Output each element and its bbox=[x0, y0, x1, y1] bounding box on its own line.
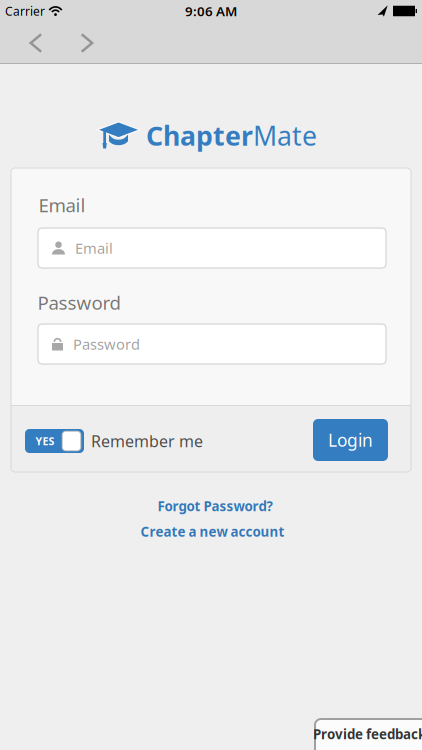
staticText: Email bbox=[38, 193, 85, 217]
staticText: Forgot Password? bbox=[157, 497, 272, 515]
button[interactable]: Login bbox=[313, 419, 388, 461]
staticText: YES bbox=[35, 434, 54, 448]
button[interactable]: Password bbox=[38, 324, 386, 364]
button[interactable]: Forgot Password? bbox=[157, 497, 272, 515]
button[interactable]: Back bbox=[21, 28, 51, 58]
staticText: 9:06 AM bbox=[185, 2, 237, 20]
button[interactable]: Email bbox=[38, 228, 386, 268]
staticText: Password bbox=[73, 334, 140, 354]
staticText: Remember me bbox=[91, 430, 203, 452]
button[interactable]: Remember me toggle, YES bbox=[25, 429, 84, 453]
button[interactable]: Create a new account bbox=[140, 523, 284, 540]
staticText: Email bbox=[75, 238, 113, 258]
staticText: Provide feedback bbox=[313, 725, 422, 743]
staticText: Login bbox=[328, 428, 373, 451]
staticText: Password bbox=[37, 290, 120, 315]
button[interactable]: Provide feedback bbox=[315, 719, 422, 750]
staticText: Create a new account bbox=[140, 523, 284, 540]
staticText: Mate bbox=[253, 118, 317, 153]
staticText: Carrier bbox=[5, 3, 45, 19]
button[interactable]: Forward bbox=[72, 28, 102, 58]
staticText: Chapter bbox=[146, 118, 253, 153]
